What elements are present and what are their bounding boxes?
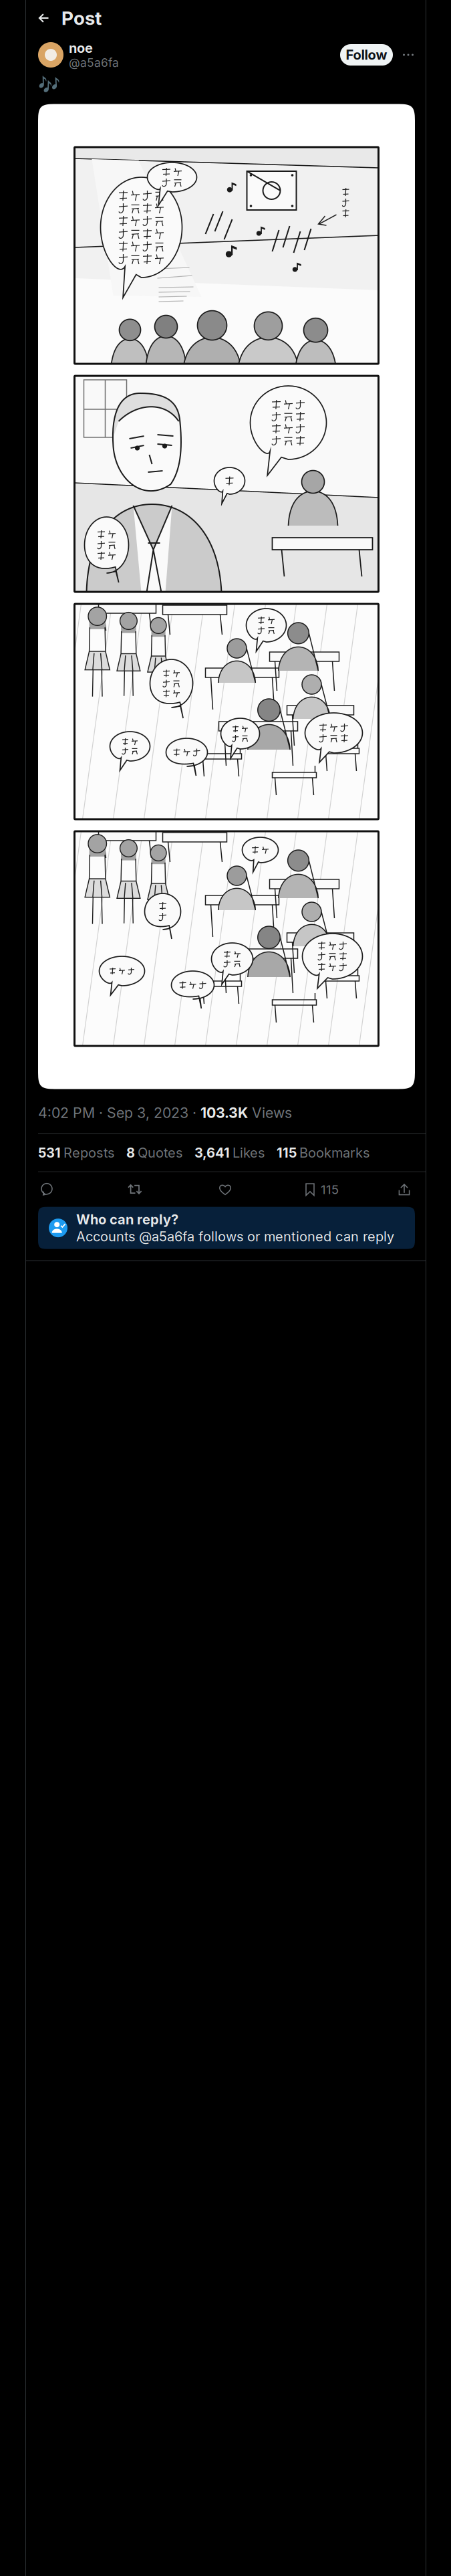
button[interactable]: 8	[126, 1145, 182, 1161]
staticText: Quotes	[138, 1145, 182, 1161]
button[interactable]: 115	[277, 1145, 369, 1161]
staticText: 531	[38, 1145, 61, 1161]
button[interactable]: Follow	[340, 44, 393, 66]
button[interactable]: Repost	[120, 1175, 150, 1204]
staticText: 4:02 PM · Sep 3, 2023 ·	[38, 1104, 200, 1121]
staticText: 115	[277, 1145, 297, 1161]
staticText: Likes	[233, 1145, 265, 1161]
button[interactable]: 3,641	[194, 1145, 265, 1161]
button[interactable]: Who can reply?	[38, 1207, 415, 1249]
staticText: 115	[321, 1182, 339, 1197]
button[interactable]: Back	[26, 0, 61, 36]
staticText: 3,641	[194, 1145, 230, 1161]
button[interactable]: 115	[305, 1175, 356, 1204]
button[interactable]: More	[396, 42, 421, 68]
staticText: 103.3K	[200, 1104, 248, 1121]
staticText: Accounts @a5a6fa follows or mentioned ca…	[76, 1229, 394, 1244]
button[interactable]: Like	[210, 1175, 240, 1204]
staticText: Bookmarks	[299, 1145, 369, 1161]
staticText: Follow	[346, 47, 387, 63]
staticText: Views	[248, 1104, 292, 1121]
staticText: noe	[69, 40, 93, 56]
staticText: @a5a6fa	[69, 56, 119, 70]
button[interactable]: Share	[390, 1175, 419, 1204]
staticText: Post	[61, 7, 102, 29]
staticText: 8	[126, 1145, 135, 1161]
button[interactable]: 531	[38, 1145, 114, 1161]
staticText: Reposts	[63, 1145, 114, 1161]
button[interactable]: Reply	[32, 1175, 61, 1204]
staticText: 🎶	[38, 75, 60, 95]
staticText: Who can reply?	[76, 1211, 178, 1227]
